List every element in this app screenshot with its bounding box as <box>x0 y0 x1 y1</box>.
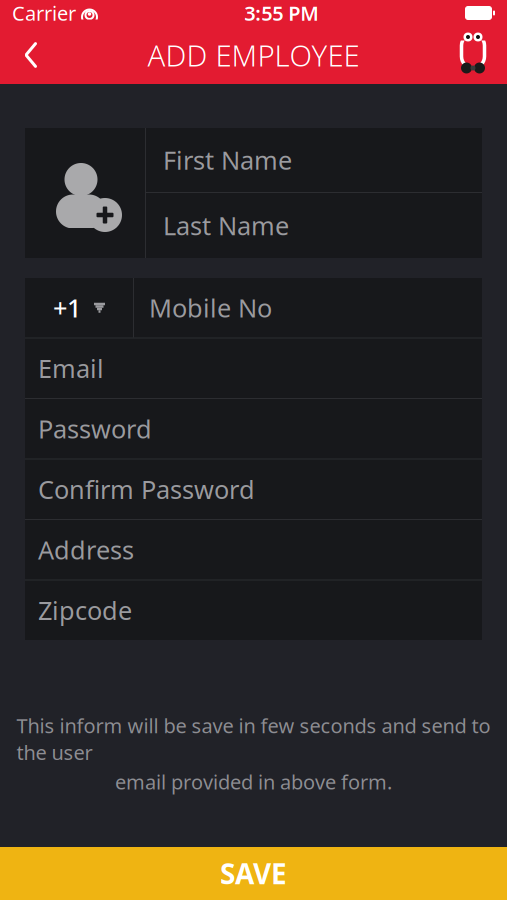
staticText: Confirm Password <box>38 472 255 506</box>
button[interactable]: First Name <box>146 128 482 192</box>
staticText: This inform will be save in few seconds … <box>16 712 490 765</box>
staticText: SAVE <box>220 855 287 892</box>
staticText: Last Name <box>163 209 289 242</box>
staticText: Address <box>38 533 134 566</box>
staticText: email provided in above form. <box>115 768 392 795</box>
staticText: Zipcode <box>38 593 132 627</box>
button[interactable]: Confirm Password <box>25 459 482 519</box>
staticText: Password <box>38 412 152 445</box>
button[interactable]: Email <box>25 338 482 398</box>
button[interactable]: Zipcode <box>25 580 482 640</box>
button[interactable]: Country code <box>25 278 133 337</box>
button[interactable]: Home <box>447 30 499 80</box>
staticText: Email <box>38 351 104 385</box>
button[interactable]: Address <box>25 520 482 579</box>
staticText: 3:55 PM <box>244 0 319 26</box>
staticText: ADD EMPLOYEE <box>147 35 359 74</box>
button[interactable]: SAVE <box>0 847 507 900</box>
staticText: First Name <box>163 143 292 177</box>
button[interactable]: Back <box>8 30 54 80</box>
staticText: +1 <box>53 291 81 324</box>
staticText: Carrier <box>12 0 76 26</box>
button[interactable]: Mobile No <box>134 278 482 337</box>
button[interactable]: Last Name <box>146 193 482 258</box>
button[interactable]: Password <box>25 399 482 458</box>
staticText: Mobile No <box>149 291 272 324</box>
